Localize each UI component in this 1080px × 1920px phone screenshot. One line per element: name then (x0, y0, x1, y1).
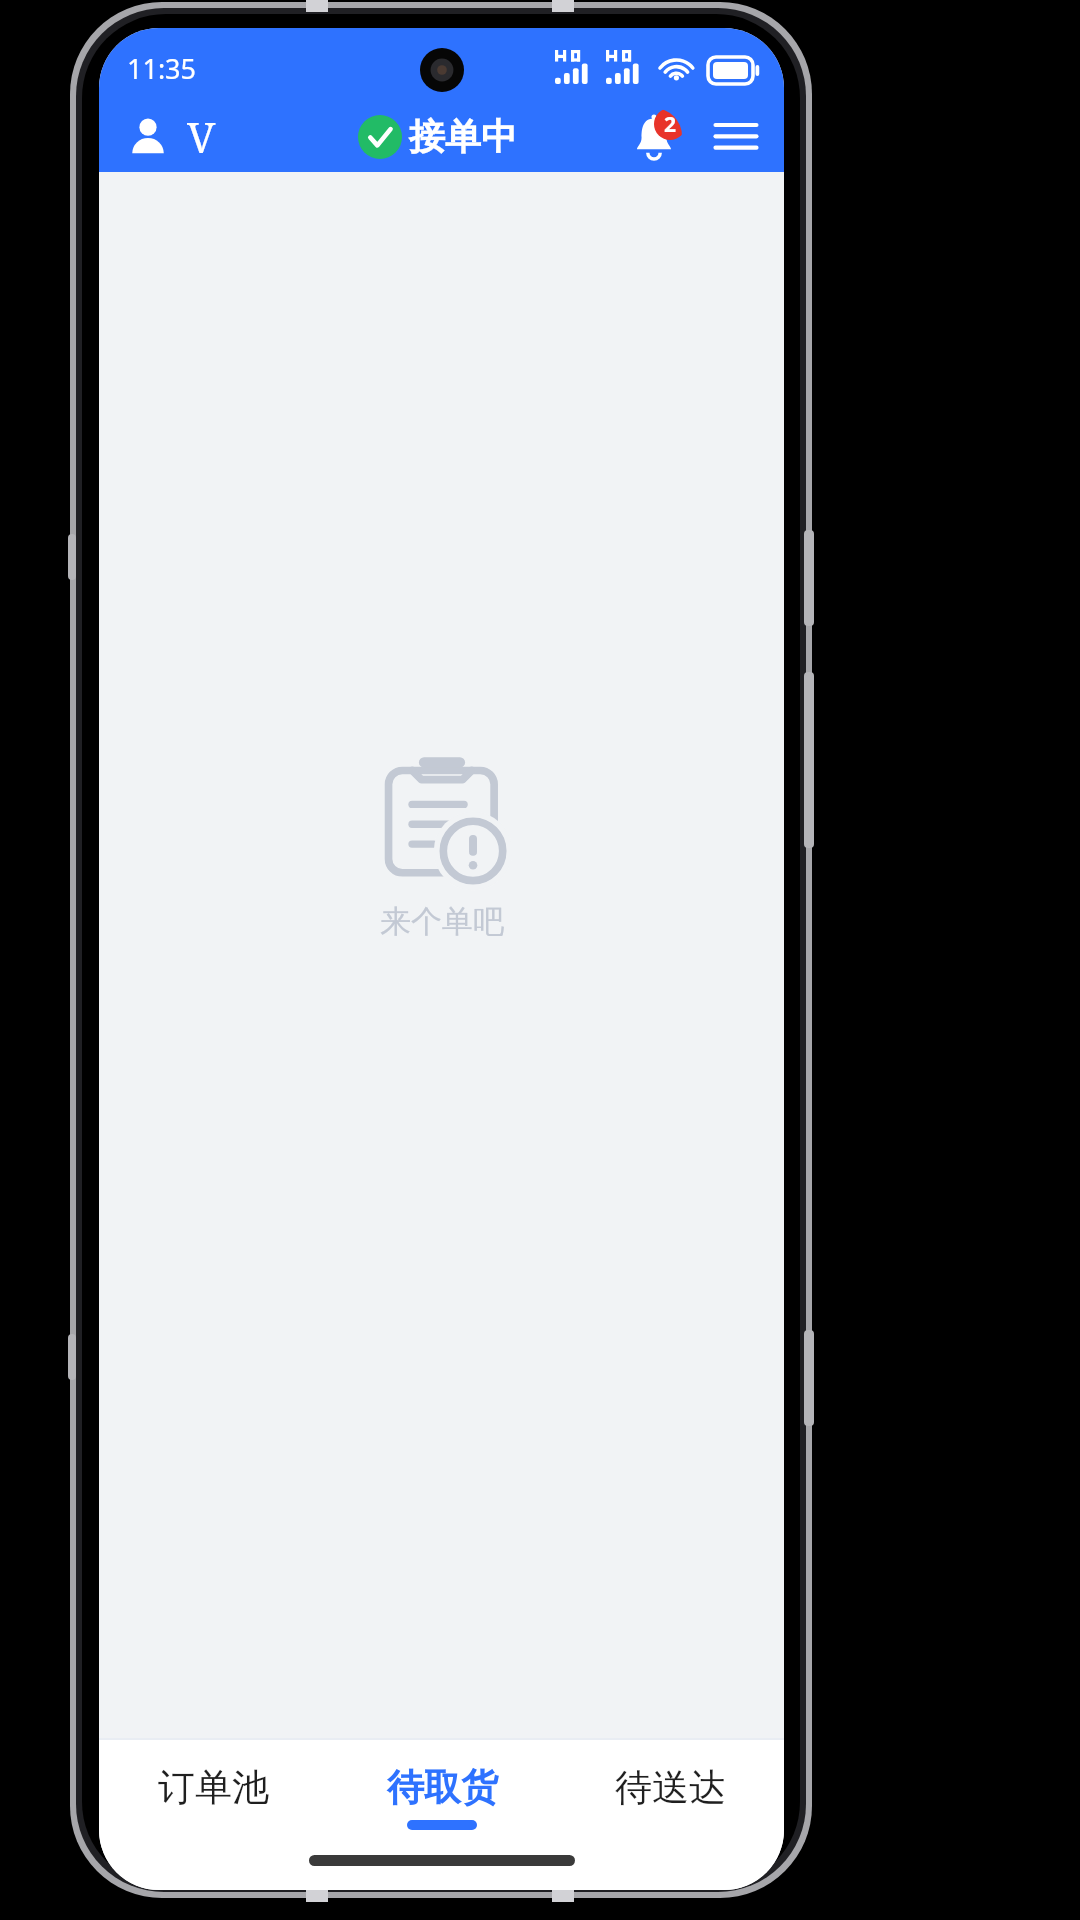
staticText: 来个单吧 (380, 902, 504, 941)
staticText: 11:35 (127, 50, 197, 87)
staticText: 待取货 (387, 1764, 498, 1811)
staticText: 接单中 (409, 114, 517, 159)
button[interactable]: 待送达 (556, 1760, 784, 1834)
button[interactable]: Profile (117, 104, 226, 169)
other: Profile (127, 116, 169, 158)
button[interactable]: 订单池 (99, 1760, 328, 1834)
button[interactable]: 待取货 (328, 1760, 556, 1834)
staticText: 订单池 (158, 1764, 269, 1811)
staticText: 待送达 (615, 1764, 726, 1811)
button[interactable]: Notifications (626, 108, 682, 164)
button[interactable]: Menu (706, 106, 766, 166)
button[interactable]: 接单中 (352, 111, 523, 162)
staticText: V (187, 108, 216, 165)
staticText: 2 (664, 110, 677, 139)
